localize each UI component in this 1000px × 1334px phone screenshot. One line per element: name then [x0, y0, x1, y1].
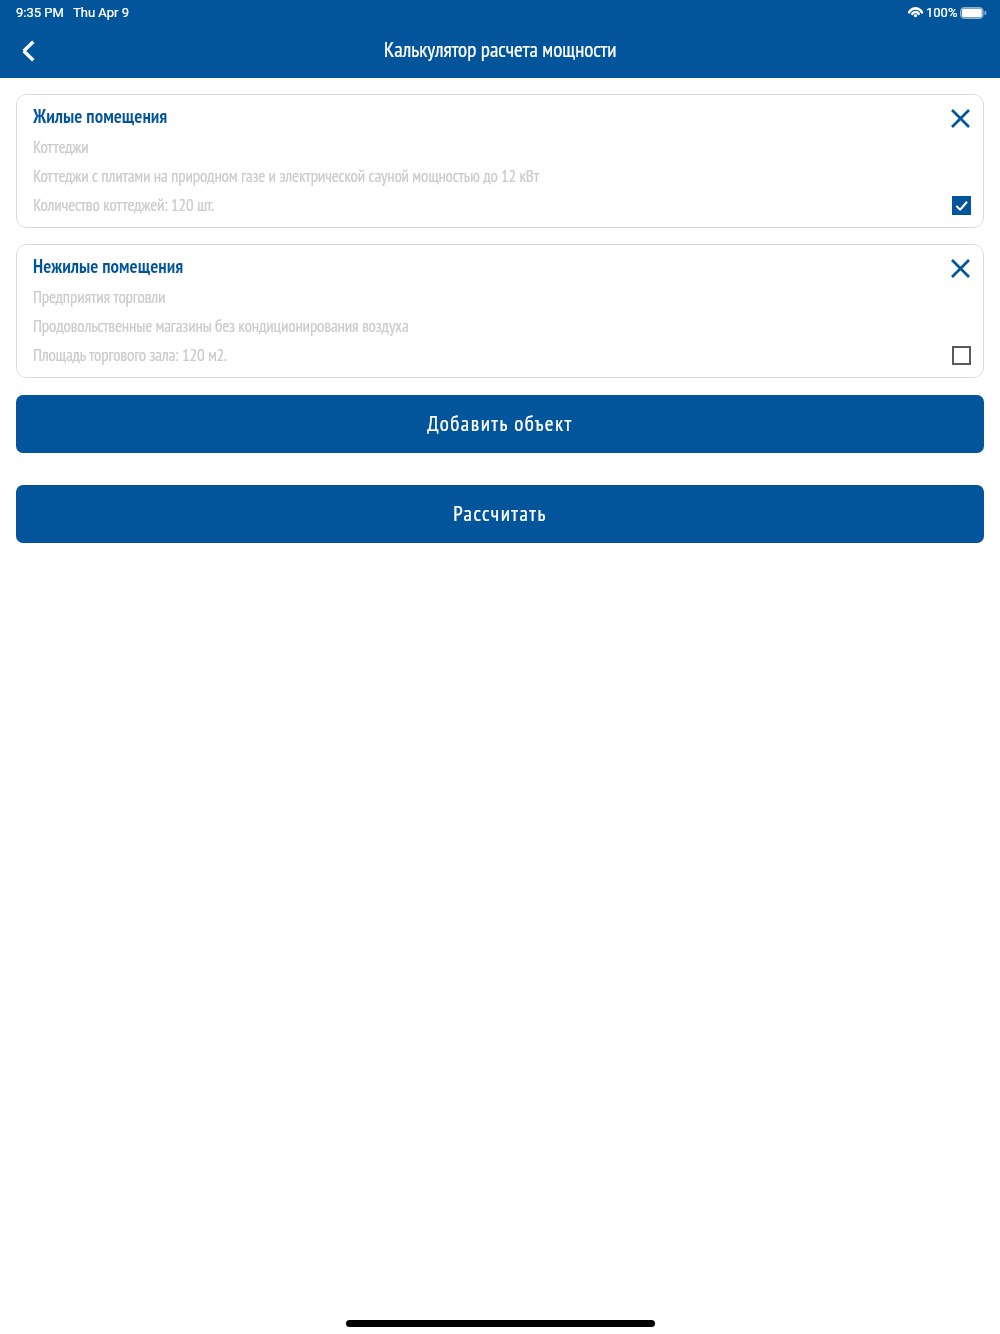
button[interactable]: Нежилые помещения [16, 244, 984, 378]
button[interactable]: Жилые помещения [16, 94, 984, 228]
staticText: Добавить объект [427, 410, 573, 437]
staticText: Площадь торгового зала: 120 м2. [33, 344, 227, 366]
button[interactable]: Select item [948, 342, 974, 368]
button[interactable]: Back [6, 29, 50, 73]
staticText: Рассчитать [453, 500, 547, 527]
staticText: Жилые помещения [33, 104, 168, 129]
staticText: Предприятия торговли [33, 286, 166, 308]
button[interactable]: Close [944, 102, 976, 134]
staticText: Калькулятор расчета мощности [384, 36, 617, 63]
staticText: Коттеджи [33, 136, 89, 158]
staticText: Коттеджи с плитами на природном газе и э… [33, 165, 539, 187]
staticText: Количество коттеджей: 120 шт. [33, 194, 214, 216]
staticText: Нежилые помещения [33, 254, 184, 279]
button[interactable]: Добавить объект [16, 395, 984, 453]
button[interactable]: Close [944, 252, 976, 284]
staticText: 9:35 PM [16, 5, 64, 20]
staticText: 100% [926, 5, 958, 20]
staticText: Thu Apr 9 [73, 5, 130, 20]
button[interactable]: Рассчитать [16, 485, 984, 543]
staticText: Продовольственные магазины без кондицион… [33, 315, 409, 337]
button[interactable]: Select item [948, 192, 974, 218]
